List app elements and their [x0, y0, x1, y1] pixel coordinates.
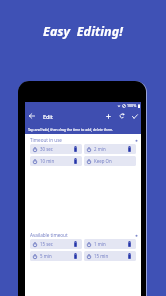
button[interactable]: Keep On: [84, 156, 136, 166]
staticText: Edit: [43, 113, 53, 120]
staticText: Timeout in use: [30, 137, 62, 143]
staticText: Tap and hold, then drag the time to add,…: [28, 127, 114, 132]
button[interactable]: 2 min: [84, 144, 136, 154]
button[interactable]: Back: [25, 108, 38, 124]
button[interactable]: 10 min: [30, 156, 82, 166]
staticText: 2 min: [94, 146, 106, 152]
button[interactable]: 1 min: [84, 239, 136, 249]
button[interactable]: 15 sec: [30, 239, 82, 249]
staticText: Easy Editing!: [43, 23, 123, 40]
staticText: 1 min: [94, 241, 106, 247]
button[interactable]: Add: [102, 108, 115, 124]
button[interactable]: Done: [128, 108, 141, 124]
staticText: 100%: [127, 103, 137, 108]
button[interactable]: 15 min: [84, 251, 136, 261]
staticText: 10 min: [40, 158, 55, 164]
staticText: 15 min: [94, 253, 109, 259]
staticText: Available timeout: [30, 232, 68, 238]
button[interactable]: 5 min: [30, 251, 82, 261]
button[interactable]: 30 sec: [30, 144, 82, 154]
staticText: 5 min: [40, 253, 52, 259]
button[interactable]: Refresh: [115, 108, 128, 124]
staticText: Keep On: [94, 158, 112, 164]
staticText: 15 sec: [40, 241, 53, 247]
staticText: 30 sec: [40, 146, 53, 152]
